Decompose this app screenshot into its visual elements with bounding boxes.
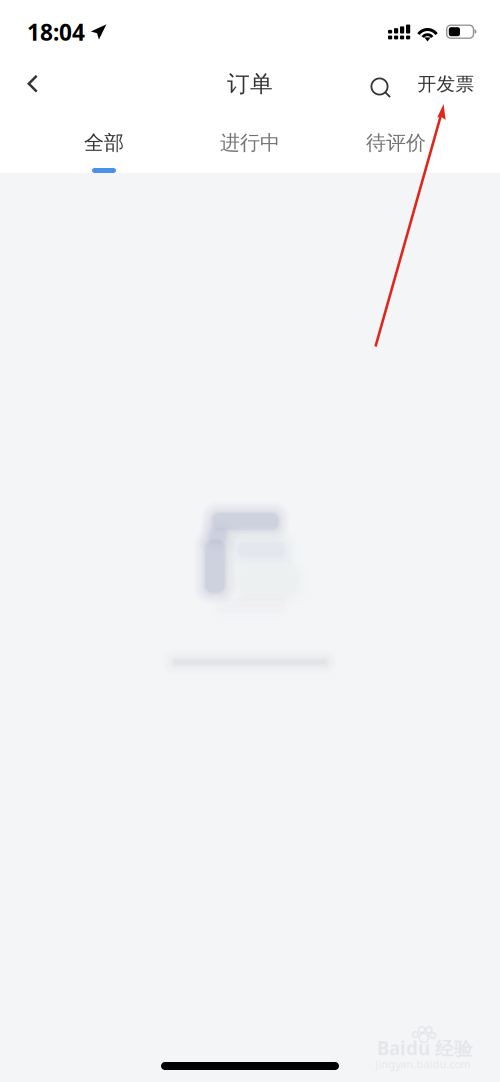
button[interactable]: 待评价 [323,110,469,173]
staticText: 开发票 [417,72,474,95]
staticText: jingyan.baidu.com [375,1057,470,1071]
staticText: 待评价 [366,130,426,155]
button[interactable]: 开发票 [405,59,486,108]
button[interactable]: Back [11,61,54,106]
staticText: Baidu 经验 [377,1036,473,1060]
staticText: 18:04 [27,17,85,47]
staticText: 全部 [84,130,124,155]
staticText: 订单 [227,70,273,98]
staticText: 进行中 [220,130,280,155]
button[interactable]: 全部 [31,110,177,173]
button[interactable]: Search [358,65,403,110]
button[interactable]: 进行中 [177,110,323,173]
